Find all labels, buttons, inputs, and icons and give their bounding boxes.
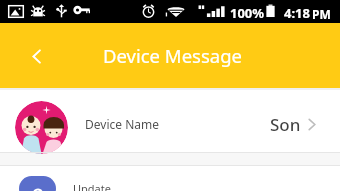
staticText: Update [73, 181, 111, 191]
button[interactable]: Device Name [0, 90, 340, 152]
staticText: 100% [230, 4, 265, 22]
button[interactable]: Back [23, 43, 49, 69]
staticText: 4:18 [284, 4, 310, 22]
staticText: Device Message [103, 43, 242, 68]
staticText: PM [312, 6, 331, 22]
staticText: Son [270, 113, 301, 136]
button[interactable]: Update [0, 166, 340, 191]
staticText: Device Name [85, 116, 159, 132]
